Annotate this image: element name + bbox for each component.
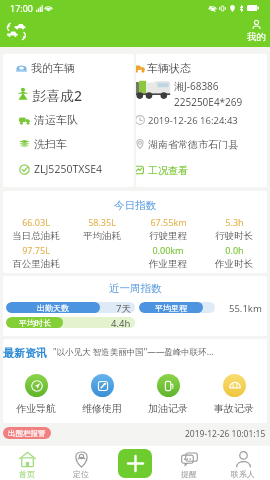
staticText: 2019-12-26 10:01:15 [185, 428, 266, 440]
staticText: 作业时长 [215, 258, 253, 270]
staticText: 作业里程 [149, 258, 187, 270]
staticText: 彭喜成2 [32, 86, 83, 102]
staticText: 车辆状态 [147, 61, 191, 75]
button[interactable]: 工况查看 [136, 162, 188, 178]
staticText: 事故记录 [214, 402, 254, 415]
staticText: 百公里油耗 [12, 258, 60, 270]
staticText: 当日总油耗 [12, 230, 60, 242]
staticText: 平均时长 [19, 318, 51, 328]
staticText: 行驶里程 [149, 230, 187, 242]
staticText: 加油记录 [148, 402, 188, 415]
button[interactable]: 加油记录 [135, 374, 201, 415]
staticText: 定位 [73, 469, 89, 479]
button[interactable]: 首页 [0, 446, 54, 480]
staticText: 我的 [247, 31, 266, 43]
staticText: 清运车队 [34, 113, 78, 127]
button[interactable]: 联系人 [216, 446, 270, 480]
staticText: 7天 [116, 302, 131, 313]
staticText: 行驶时长 [215, 230, 253, 242]
staticText: 出勤天数 [37, 303, 69, 313]
button[interactable]: Switch vehicle [4, 21, 28, 42]
button[interactable]: 事故记录 [201, 374, 267, 415]
staticText: 58.35L [88, 216, 116, 228]
staticText: 湘J-68386 [174, 79, 219, 93]
staticText: 近一周指数 [109, 282, 162, 295]
staticText: 225250E4*269 [174, 95, 243, 109]
button[interactable]: 我的 [247, 20, 266, 43]
staticText: 55.1km [229, 302, 262, 313]
staticText: 联系人 [231, 469, 255, 479]
staticText: 出围栏报警 [8, 429, 46, 438]
button[interactable]: 维修使用 [69, 374, 135, 415]
staticText: 洗扫车 [34, 137, 67, 151]
staticText: 67.55km [150, 216, 187, 228]
staticText: 工况查看 [148, 164, 188, 177]
button[interactable]: 作业导航 [3, 374, 69, 415]
staticText: 4.4h [111, 317, 131, 328]
staticText: 湖南省常德市石门县 [148, 138, 238, 151]
button[interactable]: Add [118, 449, 152, 478]
staticText: 平均里程 [155, 303, 187, 313]
button[interactable]: 出围栏报警 [8, 427, 46, 439]
staticText: 今日指数 [114, 199, 156, 212]
button[interactable]: 定位 [54, 446, 108, 480]
staticText: 17:00 [10, 2, 34, 14]
staticText: 66.03L [22, 216, 50, 228]
staticText: 0.00km [152, 244, 184, 256]
staticText: 最新资讯 [3, 346, 47, 358]
staticText: 首页 [19, 469, 35, 479]
staticText: 提醒 [181, 469, 197, 479]
staticText: 我的车辆 [31, 61, 75, 75]
staticText: 5.3h [225, 216, 244, 228]
button[interactable]: 提醒 [162, 446, 216, 480]
staticText: 0.0h [225, 244, 244, 256]
staticText: ZLJ5250TXSE4 [34, 162, 102, 176]
staticText: 2019-12-26 16:24:43 [148, 114, 238, 127]
staticText: 作业导航 [16, 402, 56, 415]
staticText: "以小见大 智造美丽中国"——盈峰中联环… [53, 346, 214, 358]
staticText: 97.75L [22, 244, 50, 256]
staticText: 平均油耗 [83, 230, 121, 242]
staticText: 维修使用 [82, 402, 122, 415]
